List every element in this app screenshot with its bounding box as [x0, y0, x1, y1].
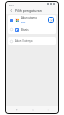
button[interactable]: Back: [8, 7, 14, 13]
button[interactable]: Recents: [12, 107, 21, 113]
staticText: 9:41: [9, 3, 14, 6]
staticText: Akun utama: [21, 16, 37, 20]
button[interactable]: Bisnis: [8, 25, 56, 34]
staticText: Akun / lainnya: [15, 39, 54, 43]
staticText: Pilih pengaturan: [15, 8, 42, 13]
button[interactable]: Akun utama: [8, 15, 56, 25]
button[interactable]: Akun / lainnya: [8, 37, 56, 45]
button[interactable]: Home: [28, 107, 37, 113]
staticText: aktif: [21, 21, 26, 24]
staticText: Bisnis: [21, 28, 54, 32]
button[interactable]: Selected: [48, 17, 54, 23]
